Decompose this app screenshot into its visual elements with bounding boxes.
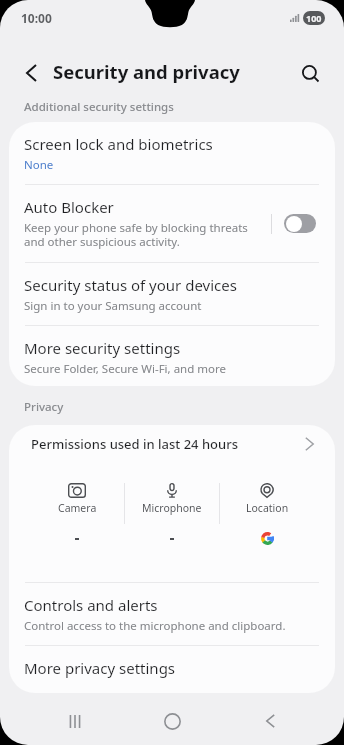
staticText: Sign in to your Samsung account	[24, 298, 202, 314]
staticText: None	[24, 157, 54, 173]
button[interactable]: Home	[149, 698, 195, 744]
button[interactable]: Location	[220, 483, 314, 545]
staticText: 100	[306, 12, 322, 24]
button[interactable]: More privacy settings	[9, 646, 335, 693]
button[interactable]: Auto Blocker	[9, 185, 335, 262]
button[interactable]: Microphone	[125, 483, 219, 545]
staticText: Additional security settings	[24, 99, 174, 115]
button[interactable]: Recent apps	[52, 698, 98, 744]
staticText: Privacy	[24, 399, 64, 415]
staticText: Location	[246, 501, 289, 515]
button[interactable]: Security status of your devices	[9, 263, 335, 325]
button[interactable]: Controls and alerts	[9, 583, 335, 645]
staticText: Microphone	[142, 501, 202, 515]
button[interactable]: Search	[290, 53, 330, 93]
staticText: Control access to the microphone and cli…	[24, 618, 286, 634]
button[interactable]: Navigate up	[11, 53, 51, 93]
button[interactable]: Camera	[30, 483, 124, 545]
staticText: Security and privacy	[53, 59, 240, 84]
button[interactable]: Back	[247, 698, 293, 744]
staticText: Secure Folder, Secure Wi-Fi, and more	[24, 361, 226, 377]
staticText: More security settings	[24, 338, 181, 358]
button[interactable]: Permissions used in last 24 hours	[9, 425, 335, 453]
staticText: Controls and alerts	[24, 595, 158, 615]
staticText: 10:00	[21, 10, 52, 26]
button[interactable]: More security settings	[9, 326, 335, 386]
staticText: Auto Blocker	[24, 197, 114, 217]
button[interactable]: Screen lock and biometrics	[9, 122, 335, 184]
button[interactable]: Auto Blocker toggle	[284, 214, 316, 233]
staticText: Camera	[58, 501, 97, 515]
staticText: More privacy settings	[24, 658, 176, 678]
staticText: Permissions used in last 24 hours	[31, 435, 305, 453]
staticText: Keep your phone safe by blocking threats…	[24, 220, 262, 250]
staticText: Screen lock and biometrics	[24, 134, 213, 154]
staticText: Security status of your devices	[24, 275, 237, 295]
